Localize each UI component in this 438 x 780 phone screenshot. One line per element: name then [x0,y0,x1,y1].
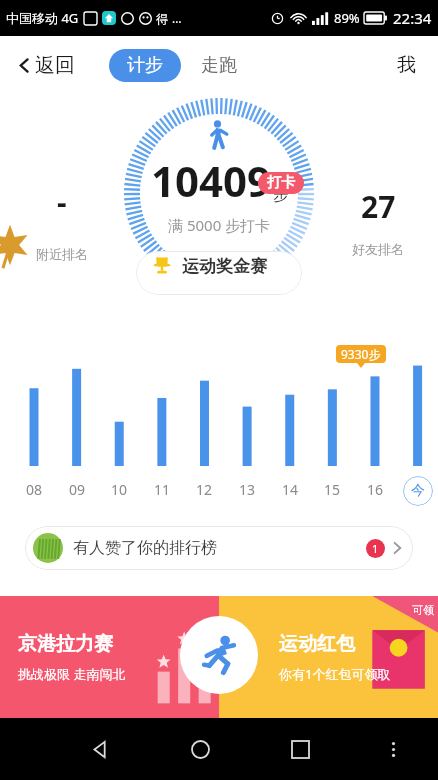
staticText: 好友排名 [352,241,404,257]
staticText: 你有1个红包可领取 [279,665,391,683]
staticText: 挑战极限 走南闯北 [18,665,126,683]
button[interactable]: 打卡 [258,172,304,194]
staticText: 运动红包 [279,632,355,656]
staticText: 计步 [127,54,163,77]
staticText: 可领 [412,603,434,617]
button[interactable]: Back [79,728,121,770]
staticText: … [172,10,182,26]
button[interactable]: 运动奖金赛 [136,251,302,295]
staticText: 27 [361,186,396,227]
staticText: 京港拉力赛 [18,632,113,656]
staticText: 走跑 [201,54,237,77]
staticText: 14 [282,480,299,499]
staticText: 中国移动 4G [6,9,79,27]
button[interactable]: 今 [403,476,433,506]
staticText: 返回 [35,53,75,78]
button[interactable]: 开始运动 [180,616,258,694]
button[interactable]: 走跑 [195,47,243,84]
staticText: 得 [156,11,168,26]
button[interactable]: 我 [391,47,422,83]
button[interactable]: More options [374,730,412,768]
button[interactable]: 返回 [12,47,79,84]
staticText: 09 [69,480,86,499]
staticText: 运动奖金赛 [182,256,267,277]
staticText: 16 [367,480,384,499]
staticText: 我 [397,53,416,77]
staticText: 89% [334,9,360,27]
button[interactable]: Home [179,728,221,770]
staticText: 9330步 [341,346,381,362]
staticText: 满 5000 步打卡 [168,215,271,235]
staticText: 步 [273,186,288,205]
staticText: 10 [111,480,128,499]
staticText: 15 [324,480,341,499]
button[interactable]: 京港拉力赛 [0,596,219,718]
staticText: 10409 [151,152,272,209]
staticText: 附近排名 [36,246,88,262]
staticText: 12 [196,480,213,499]
button[interactable]: 可领 [219,596,438,718]
staticText: 有人赞了你的排行榜 [73,538,217,558]
button[interactable]: 计步 [109,49,181,82]
staticText: 1 [372,541,379,556]
staticText: 08 [26,480,43,499]
staticText: 今 [411,482,425,500]
staticText: 22:34 [393,8,432,28]
staticText: 打卡 [267,174,295,192]
staticText: 11 [154,480,171,499]
staticText: - [57,181,67,222]
button[interactable]: 有人赞了你的排行榜 [25,526,413,570]
button[interactable]: Recents [279,728,321,770]
staticText: 13 [239,480,256,499]
